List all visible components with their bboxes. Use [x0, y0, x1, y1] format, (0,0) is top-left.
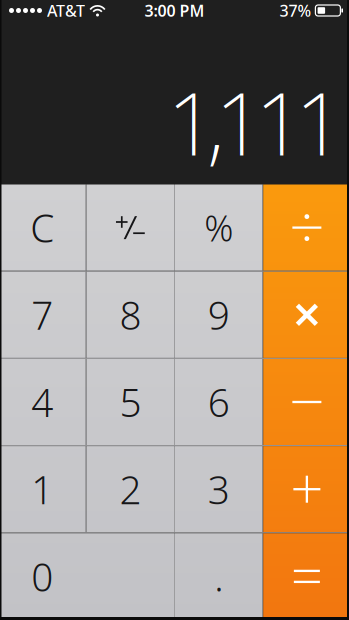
button[interactable]: 2 [87, 446, 174, 532]
button[interactable]: 9 [175, 272, 262, 358]
button[interactable]: Multiply [263, 272, 349, 358]
button[interactable]: 8 [87, 272, 174, 358]
staticText: 9 [208, 289, 230, 340]
button[interactable]: Add [263, 446, 349, 532]
button[interactable]: 5 [87, 359, 174, 445]
button[interactable]: 7 [0, 272, 86, 358]
button[interactable]: Decimal point [175, 533, 262, 619]
staticText: C [30, 202, 54, 253]
staticText: 4 [31, 376, 53, 428]
staticText: 3:00 PM [144, 0, 204, 21]
staticText: 6 [208, 376, 230, 428]
button[interactable]: Plus minus [87, 184, 174, 271]
button[interactable]: Divide [263, 184, 349, 271]
button[interactable]: 4 [0, 359, 86, 445]
button[interactable]: 0 [0, 533, 174, 619]
button[interactable]: 1 [0, 446, 86, 532]
staticText: 2 [119, 463, 141, 515]
staticText: 8 [119, 289, 141, 340]
staticText: 1,111 [167, 64, 344, 179]
staticText: . [214, 551, 223, 602]
staticText: AT&T [47, 0, 85, 21]
button[interactable]: Percent [175, 184, 262, 271]
button[interactable]: Subtract [263, 359, 349, 445]
staticText: 1 [31, 463, 53, 515]
button[interactable]: Equals [263, 533, 349, 619]
staticText: % [204, 204, 233, 251]
staticText: 37% [279, 0, 311, 21]
button[interactable]: 3 [175, 446, 262, 532]
button[interactable]: 6 [175, 359, 262, 445]
staticText: 5 [119, 376, 141, 428]
staticText: 3 [208, 463, 230, 515]
staticText: 0 [31, 551, 53, 602]
button[interactable]: Clear [0, 184, 86, 271]
staticText: 7 [31, 289, 53, 340]
